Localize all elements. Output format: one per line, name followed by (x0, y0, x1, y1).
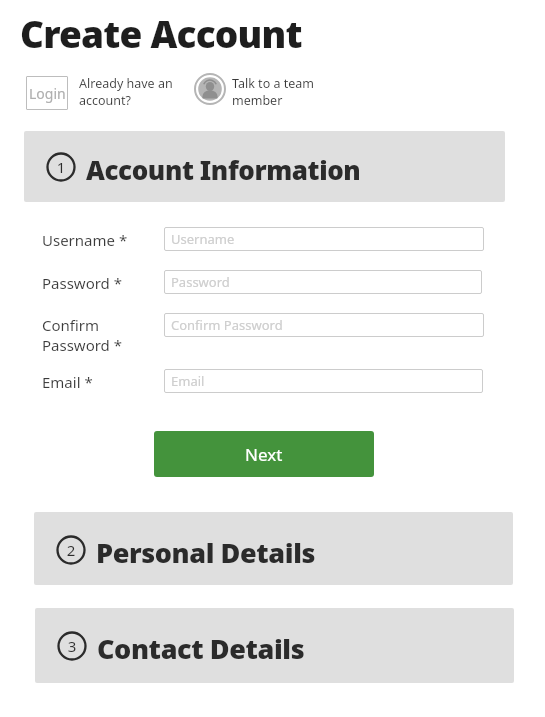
button[interactable] (35, 608, 514, 683)
staticText: Talk to a team member (232, 75, 327, 108)
button[interactable]: Talk to a team member (195, 74, 320, 108)
staticText: Already have an account? (79, 75, 184, 108)
staticText: Create Account (20, 8, 302, 58)
staticText: Next (245, 443, 283, 466)
button[interactable]: Next (154, 431, 374, 477)
staticText: Username * (42, 230, 128, 250)
staticText: Password (171, 273, 230, 291)
staticText: Personal Details (96, 534, 316, 571)
staticText: Confirm Password * (42, 315, 147, 355)
staticText: 3 (54, 636, 90, 690)
staticText: Confirm Password (171, 316, 283, 334)
button[interactable]: Confirm Password (164, 313, 484, 337)
staticText: Account Information (86, 152, 361, 187)
staticText: Email (171, 372, 205, 390)
staticText: Login (29, 84, 66, 103)
staticText: 1 (43, 157, 79, 211)
button[interactable]: Login (26, 76, 68, 110)
button[interactable]: Password (164, 270, 482, 294)
button[interactable] (24, 131, 505, 202)
button[interactable]: Already have an account? (79, 75, 184, 115)
staticText: Username (171, 230, 235, 248)
button[interactable]: Email (164, 369, 483, 393)
button[interactable]: Username (164, 227, 484, 251)
staticText: 2 (53, 540, 89, 594)
staticText: Email * (42, 372, 93, 392)
button[interactable] (34, 512, 513, 585)
staticText: Contact Details (97, 630, 305, 667)
staticText: Password * (42, 273, 123, 293)
